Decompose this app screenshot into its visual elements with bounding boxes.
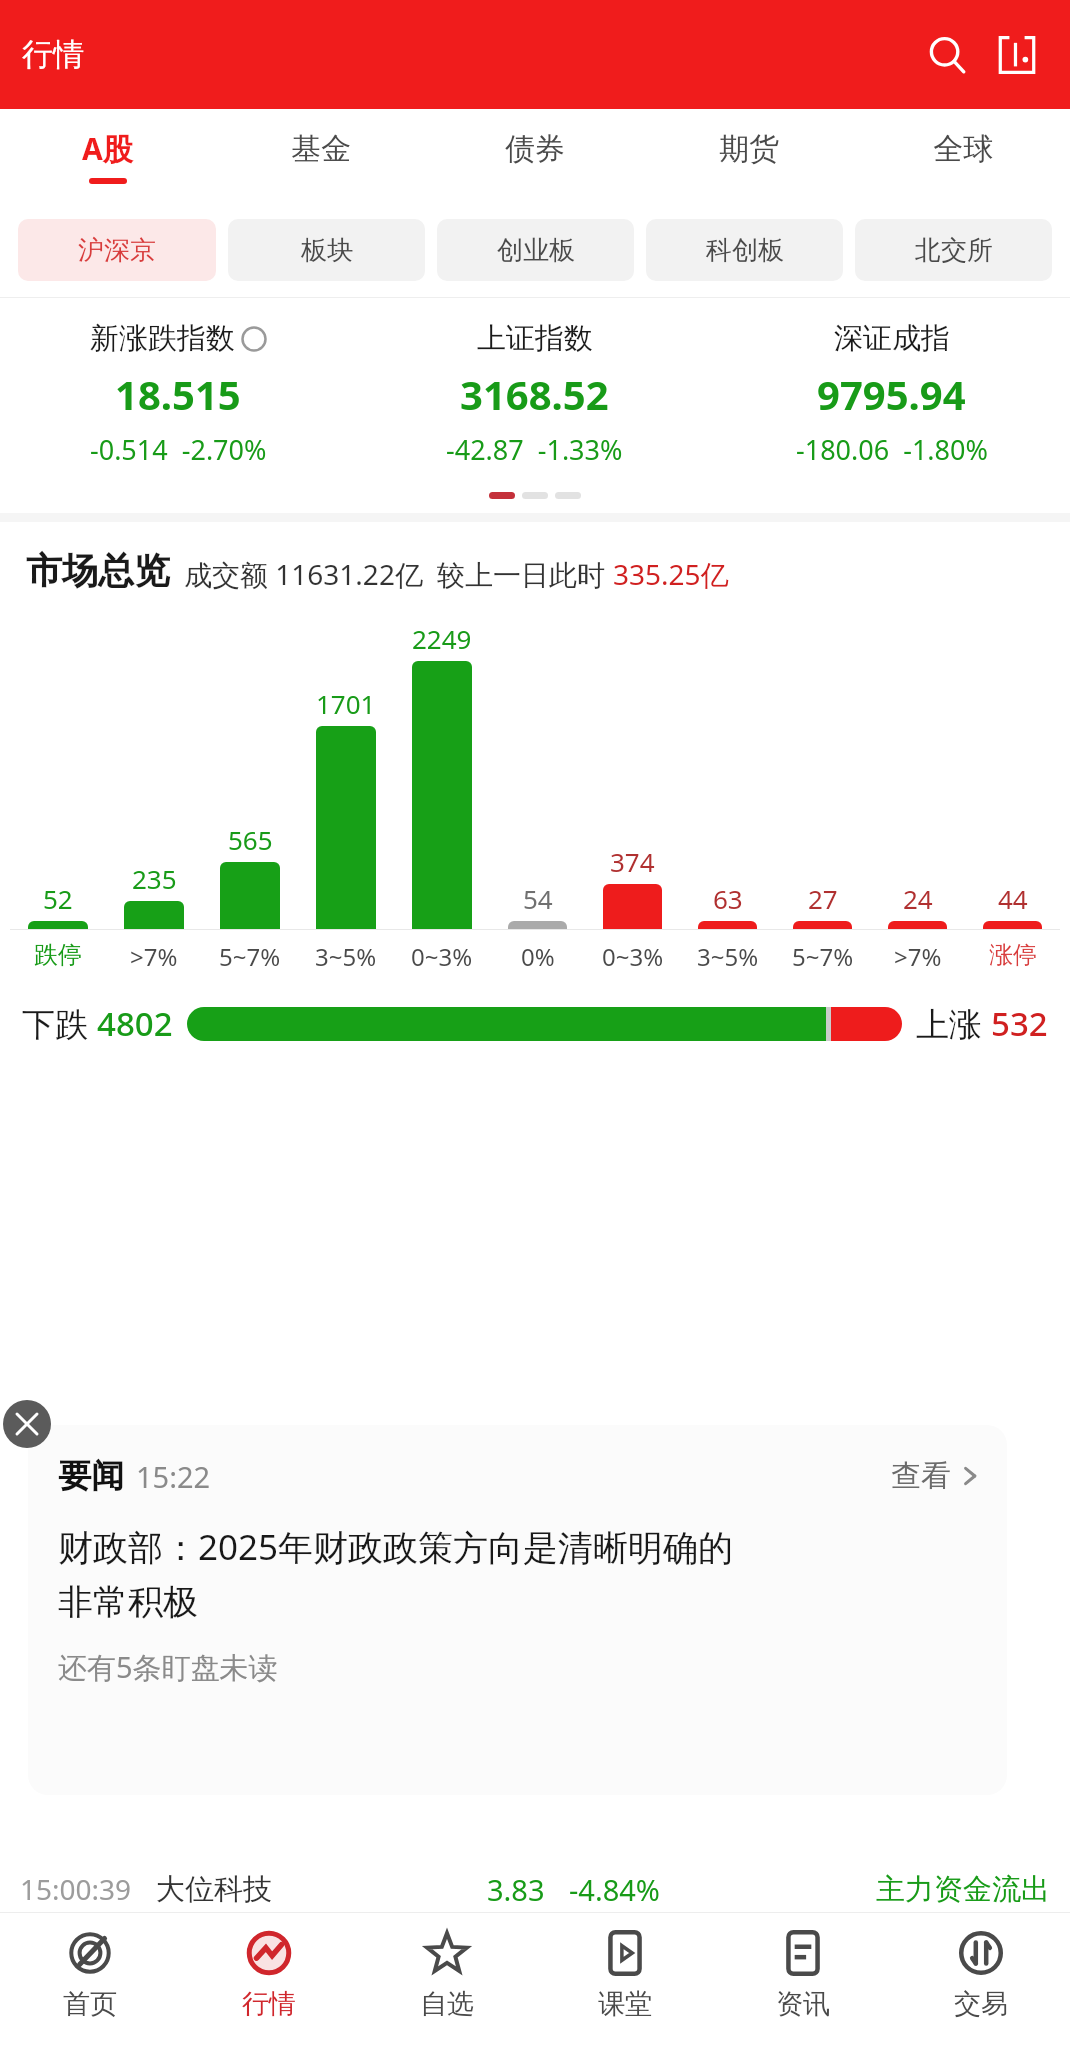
- staticText: 上涨: [916, 1001, 991, 1046]
- button[interactable]: 全球: [856, 109, 1070, 203]
- staticText: 跌停: [34, 940, 82, 970]
- button[interactable]: 要闻: [28, 1425, 1007, 1795]
- button[interactable]: 上证指数: [356, 320, 713, 468]
- staticText: 44: [998, 881, 1028, 916]
- staticText: -180.06 -1.80%: [796, 431, 988, 468]
- staticText: 查看: [891, 1457, 951, 1495]
- staticText: 大位科技: [156, 1871, 272, 1908]
- button[interactable]: 深证成指: [713, 320, 1070, 468]
- staticText: 课堂: [598, 1987, 652, 2021]
- staticText: >7%: [130, 940, 178, 973]
- staticText: 期货: [719, 130, 779, 168]
- staticText: 5~7%: [219, 940, 281, 973]
- staticText: 市场总览: [26, 548, 170, 593]
- staticText: 要闻: [58, 1455, 124, 1497]
- button[interactable]: Search: [916, 24, 978, 86]
- button[interactable]: 创业板: [437, 219, 634, 281]
- staticText: 4802: [97, 1001, 173, 1046]
- button[interactable]: 交易: [892, 1913, 1070, 2063]
- staticText: 3~5%: [315, 940, 377, 973]
- staticText: 374: [610, 844, 655, 879]
- button[interactable]: 债券: [428, 109, 642, 203]
- button[interactable]: 科创板: [646, 219, 843, 281]
- staticText: 565: [228, 822, 273, 857]
- staticText: 0~3%: [602, 940, 664, 973]
- button[interactable]: 首页: [0, 1913, 179, 2063]
- staticText: 基金: [291, 130, 351, 168]
- staticText: 深证成指: [834, 320, 950, 357]
- staticText: 9795.94: [817, 367, 966, 421]
- staticText: 532: [991, 1001, 1048, 1046]
- staticText: 3~5%: [697, 940, 759, 973]
- button[interactable]: 课堂: [536, 1913, 714, 2063]
- button[interactable]: 自选: [358, 1913, 536, 2063]
- staticText: 科创板: [706, 234, 784, 267]
- staticText: 15:00:39: [20, 1870, 132, 1908]
- staticText: 15:22: [136, 1457, 211, 1496]
- staticText: 行情: [22, 35, 84, 74]
- staticText: 52: [43, 881, 73, 916]
- staticText: -42.87 -1.33%: [446, 431, 623, 468]
- staticText: 54: [523, 881, 553, 916]
- staticText: 沪深京: [78, 234, 156, 267]
- button[interactable]: 新涨跌指数: [0, 320, 356, 468]
- staticText: 63: [713, 881, 743, 916]
- staticText: -0.514 -2.70%: [90, 431, 267, 468]
- staticText: 235: [132, 861, 177, 896]
- staticText: 3.83: [487, 1870, 545, 1909]
- staticText: 1701: [316, 686, 376, 721]
- button[interactable]: Scan: [986, 24, 1048, 86]
- staticText: 自选: [420, 1987, 474, 2021]
- staticText: 主力资金流出: [876, 1871, 1050, 1908]
- staticText: 0~3%: [411, 940, 473, 973]
- staticText: 还有5条盯盘未读: [58, 1647, 278, 1687]
- staticText: 首页: [63, 1987, 117, 2021]
- button[interactable]: 资讯: [714, 1913, 892, 2063]
- button[interactable]: 行情: [179, 1913, 358, 2063]
- staticText: 债券: [505, 130, 565, 168]
- button[interactable]: 查看: [891, 1457, 981, 1495]
- button[interactable]: A股: [0, 109, 214, 203]
- staticText: 2249: [412, 621, 472, 656]
- staticText: 行情: [242, 1987, 296, 2021]
- staticText: 成交额 11631.22亿: [184, 555, 423, 593]
- staticText: 上证指数: [477, 320, 593, 357]
- staticText: 新涨跌指数: [90, 320, 235, 357]
- staticText: 较上一日此时: [437, 555, 613, 593]
- button[interactable]: 基金: [214, 109, 428, 203]
- staticText: 0%: [521, 940, 555, 973]
- staticText: 全球: [933, 130, 993, 168]
- staticText: 交易: [954, 1987, 1008, 2021]
- staticText: -4.84%: [569, 1870, 660, 1909]
- staticText: 板块: [301, 234, 353, 267]
- button[interactable]: 期货: [642, 109, 856, 203]
- staticText: 5~7%: [792, 940, 854, 973]
- staticText: >7%: [894, 940, 942, 973]
- staticText: 财政部：2025年财政政策方向是清晰明确的 非常积极: [58, 1523, 734, 1625]
- staticText: 资讯: [776, 1987, 830, 2021]
- staticText: 下跌: [22, 1001, 97, 1046]
- staticText: 24: [903, 881, 933, 916]
- staticText: A股: [82, 128, 133, 169]
- staticText: 创业板: [497, 234, 575, 267]
- button[interactable]: Close: [3, 1400, 51, 1448]
- staticText: 北交所: [915, 234, 993, 267]
- staticText: 27: [808, 881, 838, 916]
- button[interactable]: 沪深京: [18, 219, 216, 281]
- staticText: 335.25亿: [613, 555, 729, 593]
- staticText: 涨停: [989, 940, 1037, 970]
- button[interactable]: 板块: [228, 219, 425, 281]
- button[interactable]: 北交所: [855, 219, 1052, 281]
- staticText: 3168.52: [460, 367, 609, 421]
- staticText: 18.515: [115, 367, 241, 421]
